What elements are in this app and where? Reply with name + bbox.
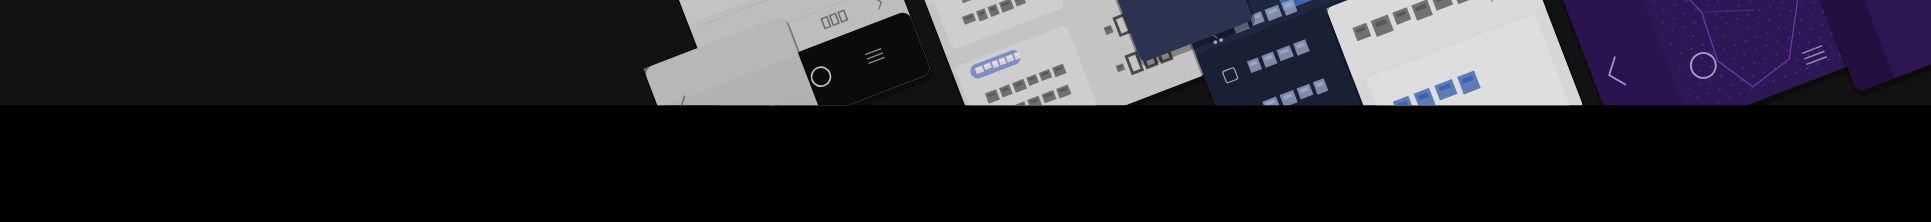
button[interactable]: Product showcase banner — [0, 0, 1931, 222]
